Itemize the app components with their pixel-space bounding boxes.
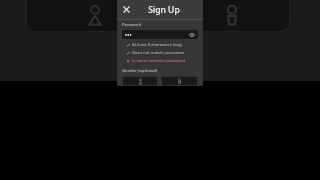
staticText: At least 8 characters long — [132, 42, 182, 48]
button[interactable]: Show password — [189, 32, 195, 38]
staticText: Sign Up — [148, 4, 180, 16]
button[interactable]: Male — [161, 76, 198, 86]
staticText: Is not a common password — [132, 58, 186, 64]
staticText: Does not match username — [132, 50, 185, 56]
button[interactable]: Show password — [122, 30, 198, 39]
staticText: Password — [122, 22, 142, 28]
staticText: Gender (optional) — [122, 68, 158, 74]
button[interactable]: Close — [120, 3, 133, 16]
button[interactable]: Female — [122, 76, 158, 86]
